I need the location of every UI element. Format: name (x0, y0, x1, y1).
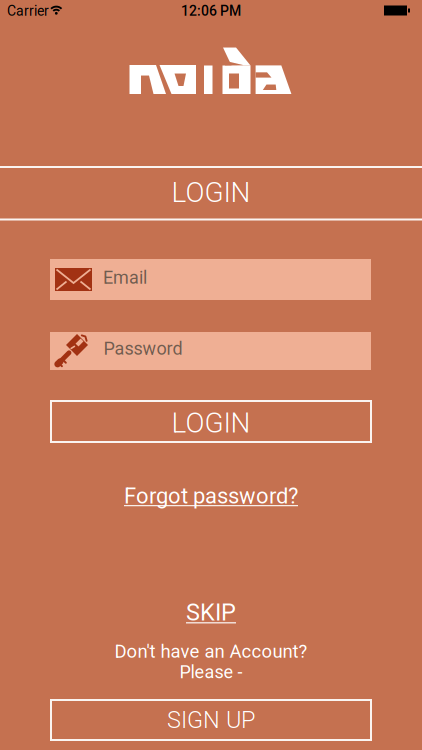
staticText: Please - (179, 661, 242, 683)
button[interactable]: SKIP (186, 599, 236, 626)
staticText: 12:06 PM (181, 3, 241, 19)
staticText: Don't have an Account? (114, 641, 307, 662)
staticText: LOGIN (171, 176, 250, 209)
button[interactable]: LOGIN (51, 401, 371, 442)
button[interactable]: Email (50, 259, 371, 300)
staticText: LOGIN (171, 407, 250, 439)
button[interactable]: Forgot password? (124, 483, 298, 509)
staticText: SKIP (186, 599, 236, 626)
button[interactable]: Password (50, 332, 371, 370)
staticText: Email (103, 267, 147, 288)
button[interactable]: SIGN UP (51, 700, 371, 740)
staticText: Forgot password? (124, 483, 298, 509)
staticText: SIGN UP (167, 706, 255, 734)
staticText: Password (103, 338, 182, 359)
staticText: Carrier (7, 3, 49, 19)
